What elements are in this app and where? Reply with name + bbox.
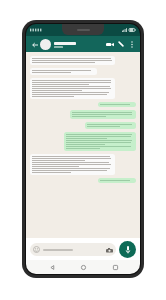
button[interactable] (85, 122, 136, 129)
button[interactable]: Call (116, 39, 126, 49)
button[interactable]: More options (127, 40, 136, 49)
button[interactable] (30, 56, 115, 65)
button[interactable]: Camera (30, 243, 116, 256)
button[interactable]: Recent apps (109, 261, 121, 273)
button[interactable]: Back (30, 40, 39, 49)
button[interactable]: Back (46, 261, 58, 273)
button[interactable] (30, 154, 115, 175)
button[interactable] (30, 78, 115, 99)
button[interactable] (64, 132, 136, 151)
button[interactable] (70, 110, 136, 119)
button[interactable] (98, 178, 136, 183)
button[interactable] (30, 68, 97, 75)
button[interactable] (40, 39, 105, 50)
button[interactable] (98, 102, 136, 107)
button[interactable]: Home (77, 261, 89, 273)
button[interactable]: Voice message (119, 241, 136, 258)
button[interactable]: Camera (105, 246, 113, 254)
button[interactable]: Video call (105, 39, 115, 49)
